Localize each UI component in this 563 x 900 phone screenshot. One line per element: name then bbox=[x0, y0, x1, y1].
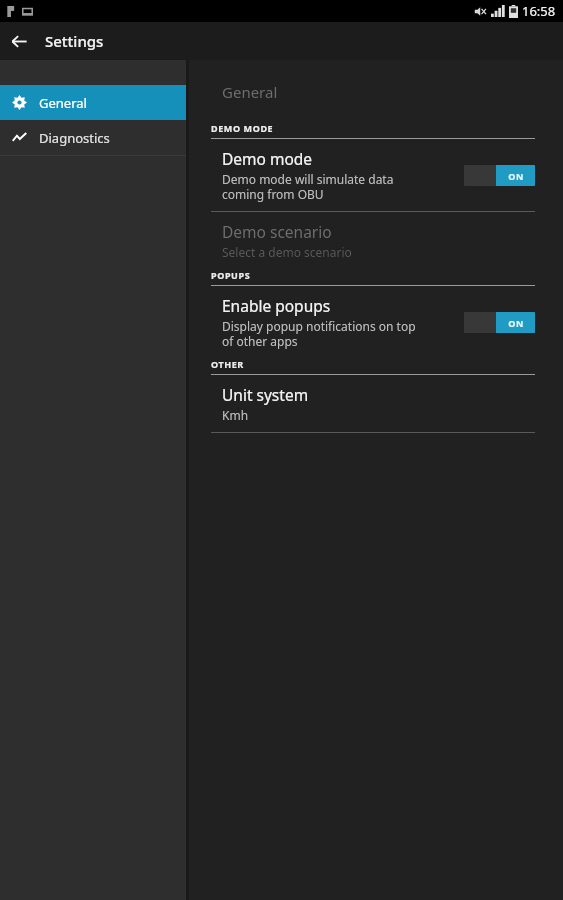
staticText: Unit system bbox=[222, 384, 309, 405]
staticText: Demo scenario bbox=[222, 221, 332, 242]
button[interactable]: Back bbox=[0, 22, 38, 60]
staticText: Demo mode will simulate data coming from… bbox=[222, 171, 394, 202]
button[interactable]: General bbox=[0, 85, 186, 120]
button[interactable]: Diagnostics bbox=[0, 120, 186, 155]
staticText: General bbox=[39, 94, 87, 112]
staticText: Select a demo scenario bbox=[222, 244, 352, 260]
staticText: POPUPS bbox=[211, 269, 251, 281]
staticText: ON bbox=[508, 170, 524, 182]
staticText: Demo mode bbox=[222, 148, 313, 169]
button[interactable]: Demo mode bbox=[189, 139, 563, 211]
staticText: General bbox=[222, 82, 278, 102]
button[interactable]: Toggle on bbox=[464, 312, 535, 333]
button[interactable]: Toggle on bbox=[464, 165, 535, 186]
button[interactable]: Unit system bbox=[189, 375, 563, 432]
button: Demo scenario bbox=[189, 212, 563, 269]
staticText: Settings bbox=[45, 31, 104, 51]
button[interactable]: Enable popups bbox=[189, 286, 563, 358]
staticText: ON bbox=[508, 317, 524, 329]
staticText: 16:58 bbox=[522, 2, 556, 20]
staticText: Enable popups bbox=[222, 295, 331, 316]
staticText: Display popup notifications on top of ot… bbox=[222, 318, 416, 349]
staticText: OTHER bbox=[211, 358, 244, 370]
staticText: Kmh bbox=[222, 407, 249, 423]
staticText: Diagnostics bbox=[39, 129, 110, 147]
staticText: DEMO MODE bbox=[211, 122, 274, 134]
